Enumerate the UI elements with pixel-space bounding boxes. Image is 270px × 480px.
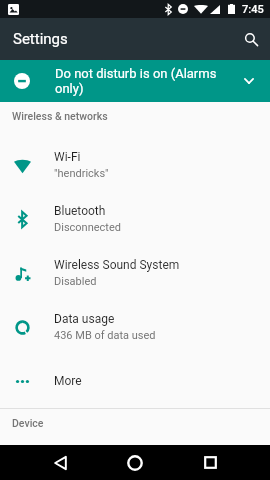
staticText: Device bbox=[12, 417, 44, 429]
staticText: Wireless Sound System bbox=[54, 258, 180, 272]
button[interactable]: Wireless Sound System bbox=[0, 246, 270, 300]
button[interactable]: Home bbox=[111, 445, 159, 480]
staticText: Wireless & networks bbox=[12, 110, 108, 122]
button[interactable]: Data usage bbox=[0, 300, 270, 354]
staticText: 7:45 bbox=[242, 3, 264, 16]
staticText: More bbox=[54, 374, 82, 388]
staticText: Wi-Fi bbox=[54, 150, 81, 164]
other: Expand bbox=[236, 60, 270, 102]
button[interactable]: Bluetooth bbox=[0, 192, 270, 246]
staticText: Disconnected bbox=[54, 221, 121, 234]
button[interactable]: Search bbox=[228, 18, 270, 60]
staticText: "hendricks" bbox=[54, 167, 109, 180]
button[interactable]: Wi-Fi bbox=[0, 138, 270, 192]
button[interactable]: Do not disturb is on (Alarms only) bbox=[0, 60, 270, 102]
button[interactable]: Recent apps bbox=[186, 445, 234, 480]
staticText: 436 MB of data used bbox=[54, 329, 156, 342]
button[interactable]: More bbox=[0, 354, 270, 408]
staticText: Do not disturb is on (Alarms only) bbox=[55, 66, 227, 96]
staticText: Bluetooth bbox=[54, 204, 106, 218]
staticText: Data usage bbox=[54, 312, 115, 326]
staticText: Disabled bbox=[54, 275, 97, 288]
button[interactable]: Back bbox=[36, 445, 84, 480]
staticText: Settings bbox=[13, 30, 68, 48]
